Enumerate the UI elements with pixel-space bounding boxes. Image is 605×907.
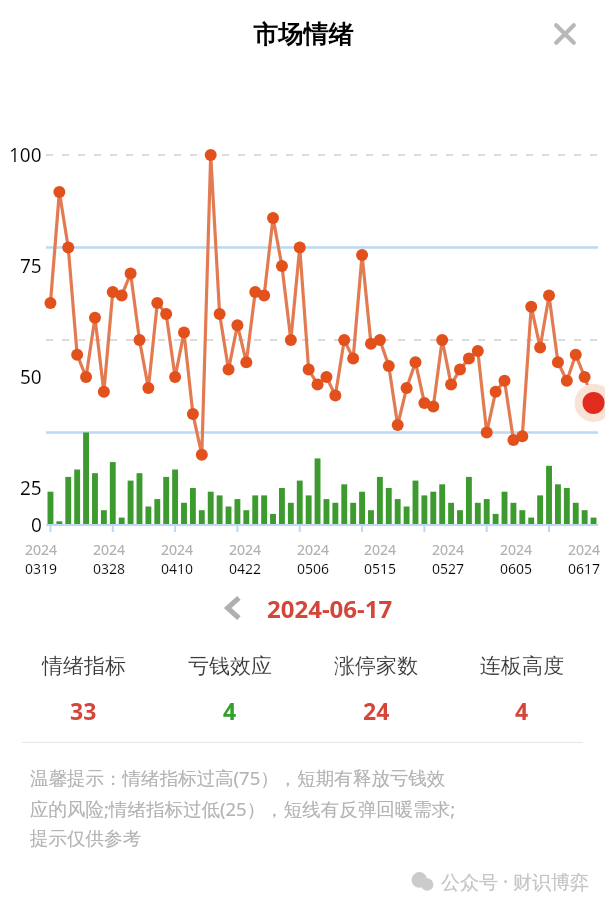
staticText: 2024 xyxy=(568,540,601,559)
staticText: 0328 xyxy=(93,559,126,578)
staticText: 2024 xyxy=(161,540,194,559)
staticText: 0527 xyxy=(432,559,465,578)
button[interactable]: 亏钱效应 xyxy=(157,653,303,726)
staticText: 涨停家数 xyxy=(334,653,418,679)
staticText: 连板高度 xyxy=(480,653,564,679)
staticText: 4 xyxy=(515,695,529,726)
button[interactable]: 情绪指标 xyxy=(10,653,157,726)
staticText: 75 xyxy=(20,253,42,279)
button[interactable]: 连板高度 xyxy=(449,653,595,726)
button[interactable]: Close xyxy=(543,12,587,56)
staticText: 2024 xyxy=(364,540,397,559)
staticText: 2024 xyxy=(500,540,533,559)
staticText: 0422 xyxy=(229,559,262,578)
staticText: 0617 xyxy=(568,559,601,578)
staticText: 24 xyxy=(363,695,390,726)
staticText: 2024 xyxy=(25,540,58,559)
staticText: 2024 xyxy=(93,540,126,559)
button[interactable]: 2024-06-17 xyxy=(267,592,393,625)
button[interactable]: Previous day xyxy=(213,588,253,628)
staticText: 0410 xyxy=(161,559,194,578)
staticText: 应的风险;情绪指标过低(25），短线有反弹回暖需求; xyxy=(30,796,456,821)
button[interactable]: 涨停家数 xyxy=(303,653,449,726)
staticText: 33 xyxy=(70,695,97,726)
staticText: 提示仅供参考 xyxy=(30,827,141,850)
staticText: 50 xyxy=(20,364,42,390)
staticText: 0506 xyxy=(297,559,330,578)
staticText: 公众号 · 财识博弈 xyxy=(441,869,589,895)
staticText: 0 xyxy=(31,512,42,538)
staticText: 0515 xyxy=(364,559,397,578)
staticText: 0605 xyxy=(500,559,533,578)
staticText: 4 xyxy=(223,695,237,726)
staticText: 2024 xyxy=(297,540,330,559)
staticText: 25 xyxy=(20,475,42,501)
staticText: 市场情绪 xyxy=(253,19,353,50)
staticText: 0319 xyxy=(25,559,58,578)
staticText: 100 xyxy=(9,142,42,168)
staticText: 温馨提示：情绪指标过高(75），短期有释放亏钱效 xyxy=(30,765,446,790)
staticText: 2024 xyxy=(432,540,465,559)
staticText: 情绪指标 xyxy=(42,653,126,679)
staticText: 亏钱效应 xyxy=(188,653,272,679)
staticText: 2024 xyxy=(229,540,262,559)
